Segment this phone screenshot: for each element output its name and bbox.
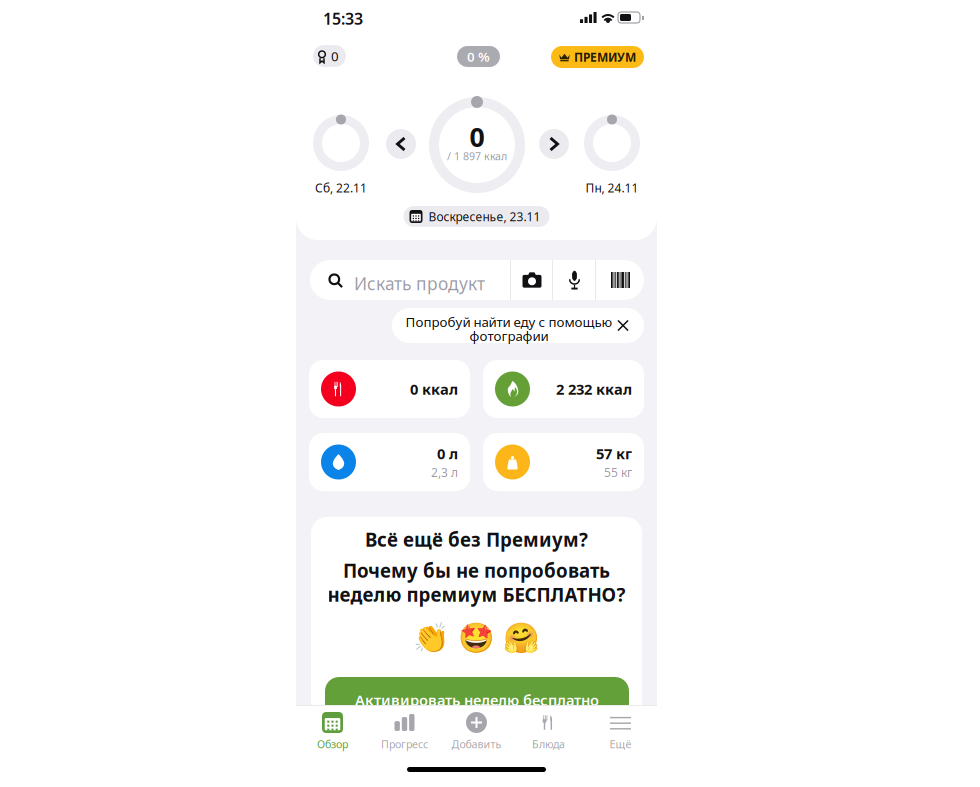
staticText: 0 л	[437, 444, 458, 463]
button[interactable]: Штрихкод	[596, 260, 645, 300]
staticText: Почему бы не попробовать	[343, 558, 610, 583]
staticText: 57 кг	[596, 444, 632, 463]
button[interactable]: Следующий день	[539, 129, 569, 159]
staticText: Ещё	[609, 737, 631, 751]
staticText: 0 %	[467, 48, 490, 65]
staticText: неделю премиум БЕСПЛАТНО?	[327, 582, 625, 607]
button[interactable]: 0 л	[309, 433, 470, 491]
staticText: 55 кг	[604, 464, 632, 480]
staticText: 0 ккал	[410, 379, 458, 399]
staticText: Сб, 22.11	[315, 180, 367, 196]
staticText: 0	[331, 47, 339, 65]
staticText: Всё ещё без Премиум?	[365, 527, 588, 552]
button[interactable]: Активировать неделю бесплатно	[325, 677, 629, 723]
staticText: Попробуй найти еду с помощью	[405, 313, 612, 331]
button[interactable]: 57 кг	[483, 433, 644, 491]
staticText: фотографии	[469, 327, 548, 345]
staticText: Искать продукт	[354, 272, 485, 295]
staticText: Активировать неделю бесплатно	[355, 690, 599, 710]
button[interactable]: Воскресенье, 23.11	[403, 206, 549, 227]
button[interactable]: 0 ккал	[309, 360, 470, 418]
staticText: / 1 897 ккал	[447, 149, 507, 163]
button[interactable]: Предыдущий день	[386, 129, 416, 159]
staticText: 15:33	[323, 8, 363, 29]
button[interactable]: Голос	[553, 260, 596, 300]
staticText: Пн, 24.11	[585, 180, 638, 196]
staticText: 2,3 л	[431, 464, 458, 480]
staticText: 2 232 ккал	[556, 379, 632, 399]
staticText: Обзор	[317, 737, 348, 751]
button[interactable]: Прогресс	[368, 712, 440, 752]
button[interactable]: Добавить	[440, 712, 512, 752]
staticText: Прогресс	[381, 737, 428, 751]
button[interactable]: Ещё	[584, 712, 656, 752]
staticText: Блюда	[532, 737, 565, 751]
staticText: 0	[469, 119, 484, 154]
button[interactable]: 0	[313, 45, 346, 67]
button[interactable]: Обзор	[296, 712, 368, 752]
button[interactable]: Фото	[511, 260, 553, 300]
staticText: Добавить	[451, 737, 501, 751]
button[interactable]: ПРЕМИУМ	[551, 46, 644, 68]
button[interactable]: Закрыть	[608, 308, 638, 343]
button[interactable]: Блюда	[512, 712, 584, 752]
staticText: ПРЕМИУМ	[574, 49, 636, 65]
button[interactable]: 2 232 ккал	[483, 360, 644, 418]
staticText: Воскресенье, 23.11	[428, 208, 540, 224]
staticText: 👏 🤩 🤗	[413, 617, 540, 656]
